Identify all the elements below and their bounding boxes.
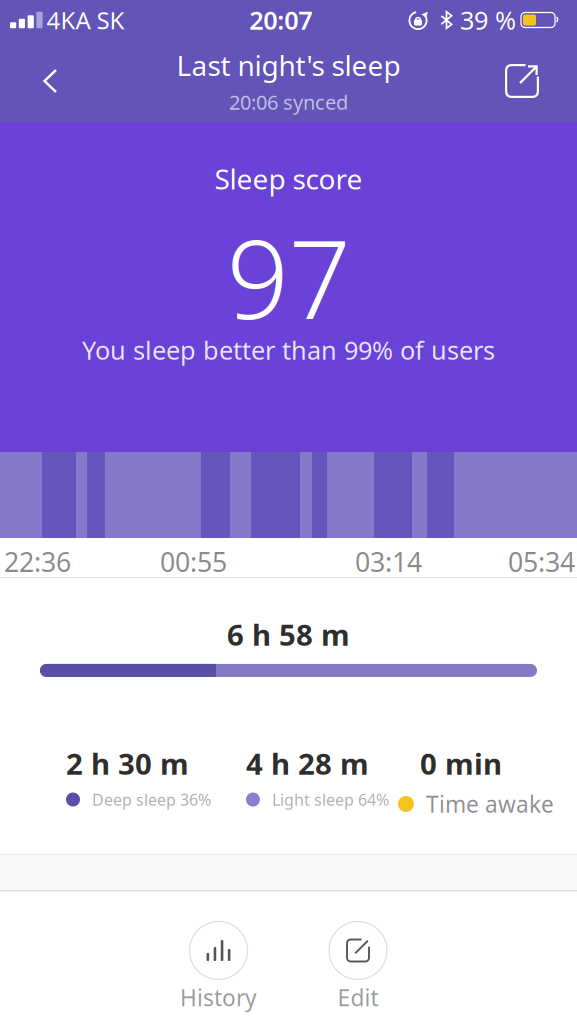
staticText: 20:06 synced: [229, 89, 348, 115]
staticText: Sleep score: [214, 160, 362, 197]
staticText: 97: [226, 204, 350, 349]
staticText: 20:07: [249, 3, 312, 37]
staticText: 39 %: [460, 3, 516, 37]
staticText: 05:34: [508, 544, 575, 579]
staticText: 4KA SK: [47, 4, 125, 36]
staticText: History: [180, 982, 257, 1013]
staticText: Last night's sleep: [176, 47, 400, 84]
staticText: 4 h 28 m: [246, 744, 369, 783]
staticText: Deep sleep 36%: [92, 789, 211, 810]
button[interactable]: Back: [0, 55, 58, 107]
staticText: 6 h 58 m: [227, 615, 350, 654]
staticText: Edit: [337, 982, 378, 1013]
staticText: 03:14: [355, 544, 422, 579]
staticText: 22:36: [4, 544, 71, 579]
button[interactable]: History: [180, 921, 257, 1013]
staticText: 00:55: [160, 544, 227, 579]
button[interactable]: Edit: [329, 921, 387, 1013]
staticText: 2 h 30 m: [66, 744, 189, 783]
staticText: Time awake: [426, 789, 554, 819]
staticText: 0 min: [420, 744, 502, 783]
button[interactable]: Share: [505, 52, 577, 110]
staticText: You sleep better than 99% of users: [82, 333, 495, 367]
staticText: Light sleep 64%: [272, 789, 389, 810]
